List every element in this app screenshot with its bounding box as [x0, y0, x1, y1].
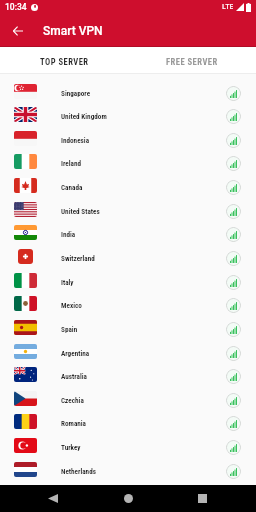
button[interactable]: Signal strength [226, 322, 241, 337]
button[interactable]: TOP SERVER [0, 47, 128, 73]
button[interactable]: Signal strength [226, 227, 241, 242]
button[interactable]: Signal strength [226, 440, 241, 455]
button[interactable]: Signal strength [226, 416, 241, 431]
button[interactable]: Spain [0, 315, 256, 339]
button[interactable]: Indonesia [0, 126, 256, 150]
button[interactable]: Signal strength [226, 86, 241, 101]
staticText: United States [61, 207, 100, 215]
button[interactable]: Turkey [0, 433, 256, 457]
button[interactable]: Signal strength [226, 109, 241, 124]
staticText: Smart VPN [43, 24, 103, 38]
button[interactable]: Signal strength [226, 298, 241, 313]
button[interactable]: Netherlands [0, 457, 256, 481]
button[interactable]: Switzerland [0, 244, 256, 268]
button[interactable]: Signal strength [226, 369, 241, 384]
button[interactable]: Recents [191, 487, 213, 509]
staticText: Spain [61, 325, 78, 333]
button[interactable]: Signal strength [226, 346, 241, 361]
button[interactable]: India [0, 220, 256, 244]
staticText: FREE SERVER [166, 57, 218, 67]
button[interactable]: Signal strength [226, 393, 241, 408]
button[interactable]: Signal strength [226, 204, 241, 219]
button[interactable]: Mexico [0, 291, 256, 315]
button[interactable]: Back [6, 19, 29, 42]
button[interactable]: Czechia [0, 386, 256, 410]
button[interactable]: Home [117, 487, 139, 509]
button[interactable]: Canada [0, 173, 256, 197]
staticText: Italy [61, 278, 74, 286]
staticText: Indonesia [61, 136, 90, 144]
button[interactable]: United Kingdom [0, 102, 256, 126]
button[interactable]: Signal strength [226, 275, 241, 290]
staticText: Mexico [61, 301, 82, 309]
staticText: Canada [61, 183, 83, 191]
button[interactable]: Singapore [0, 79, 256, 103]
button[interactable]: Romania [0, 409, 256, 433]
button[interactable]: Argentina [0, 339, 256, 363]
staticText: Ireland [61, 159, 81, 167]
button[interactable]: Back [42, 487, 64, 509]
button[interactable]: Signal strength [226, 464, 241, 479]
button[interactable]: Signal strength [226, 251, 241, 266]
staticText: Turkey [61, 443, 81, 451]
button[interactable]: Signal strength [226, 133, 241, 148]
button[interactable]: United States [0, 197, 256, 221]
staticText: TOP SERVER [40, 57, 89, 67]
button[interactable]: Signal strength [226, 156, 241, 171]
button[interactable]: Australia [0, 362, 256, 386]
button[interactable]: Ireland [0, 149, 256, 173]
staticText: India [61, 230, 76, 238]
button[interactable]: FREE SERVER [128, 47, 256, 73]
staticText: Argentina [61, 349, 90, 357]
staticText: Australia [61, 372, 87, 380]
staticText: Netherlands [61, 467, 96, 475]
staticText: Romania [61, 419, 87, 427]
staticText: United Kingdom [61, 112, 107, 120]
staticText: 10:34 [5, 2, 27, 12]
staticText: Switzerland [61, 254, 95, 262]
button[interactable]: Signal strength [226, 180, 241, 195]
staticText: Singapore [61, 89, 91, 97]
button[interactable]: Italy [0, 268, 256, 292]
staticText: LTE [222, 2, 234, 12]
staticText: Czechia [61, 396, 84, 404]
